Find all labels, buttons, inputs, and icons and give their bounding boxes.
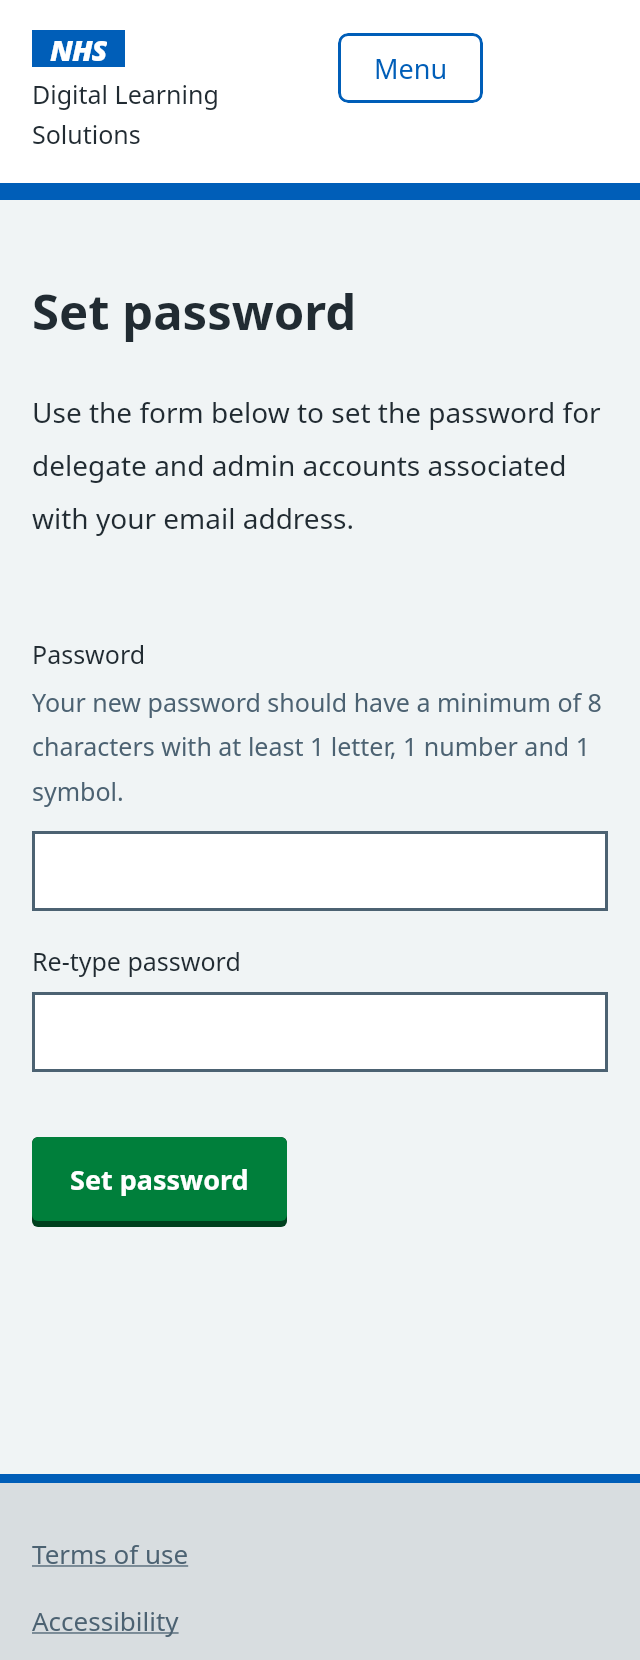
staticText: Your new password should have a minimum … (32, 685, 608, 809)
button[interactable]: Terms of use (32, 1536, 189, 1571)
button[interactable]: Password input (32, 831, 608, 911)
staticText: Set password (32, 278, 357, 345)
staticText: NHS (50, 30, 107, 67)
staticText: Solutions (32, 117, 141, 151)
button[interactable]: NHS home (32, 30, 125, 67)
staticText: Menu (374, 50, 448, 87)
staticText: Use the form below to set the password f… (32, 393, 608, 537)
staticText: Accessibility (32, 1603, 179, 1638)
staticText: Terms of use (32, 1536, 189, 1571)
staticText: Digital Learning (32, 77, 219, 111)
button[interactable]: Password input (32, 992, 608, 1072)
button[interactable]: Menu (338, 33, 483, 103)
button[interactable]: Accessibility (32, 1603, 179, 1638)
button[interactable]: Set password (32, 1137, 287, 1227)
staticText: Re-type password (32, 944, 241, 978)
staticText: Password (32, 637, 146, 671)
staticText: Set password (70, 1161, 249, 1198)
